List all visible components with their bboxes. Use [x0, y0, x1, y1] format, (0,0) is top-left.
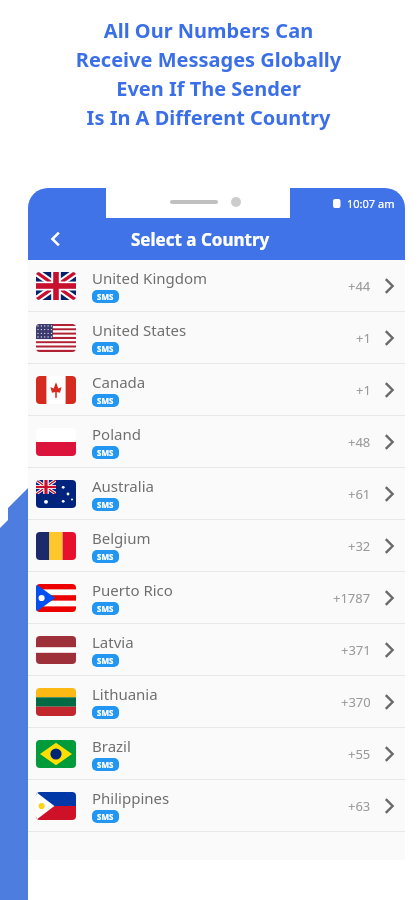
button[interactable]: Australia [28, 468, 405, 520]
staticText: SMS [97, 343, 114, 354]
staticText: Poland [92, 424, 141, 444]
staticText: United Kingdom [92, 268, 208, 288]
staticText: SMS [97, 707, 114, 718]
button[interactable]: United States [28, 312, 405, 364]
staticText: +44 [348, 277, 371, 295]
staticText: SMS [97, 395, 114, 406]
staticText: Receive Messages Globally [0, 46, 417, 73]
button[interactable]: Back [38, 221, 74, 257]
staticText: Select a Country [131, 228, 270, 251]
staticText: All Our Numbers Can [0, 17, 417, 44]
staticText: +48 [348, 433, 371, 451]
staticText: SMS [97, 499, 114, 510]
staticText: Philippines [92, 788, 170, 808]
staticText: SMS [97, 551, 114, 562]
staticText: 10:07 am [347, 196, 395, 211]
staticText: SMS [97, 759, 114, 770]
staticText: SMS [97, 811, 114, 822]
staticText: Canada [92, 372, 146, 392]
staticText: SMS [97, 603, 114, 614]
staticText: +371 [341, 641, 371, 659]
button[interactable]: Poland [28, 416, 405, 468]
button[interactable]: Philippines [28, 780, 405, 832]
staticText: SMS [97, 291, 114, 302]
staticText: +32 [348, 537, 371, 555]
staticText: Lithuania [92, 684, 158, 704]
button[interactable]: United Kingdom [28, 260, 405, 312]
staticText: +1787 [333, 589, 371, 607]
button[interactable]: Latvia [28, 624, 405, 676]
staticText: SMS [97, 655, 114, 666]
staticText: Brazil [92, 736, 131, 756]
staticText: Is In A Different Country [0, 104, 417, 131]
staticText: +63 [348, 797, 371, 815]
staticText: United States [92, 320, 187, 340]
staticText: Even If The Sender [0, 75, 417, 102]
staticText: +61 [348, 485, 371, 503]
staticText: SMS [97, 447, 114, 458]
button[interactable]: Belgium [28, 520, 405, 572]
button[interactable]: Puerto Rico [28, 572, 405, 624]
staticText: Belgium [92, 528, 151, 548]
staticText: Latvia [92, 632, 134, 652]
button[interactable]: Canada [28, 364, 405, 416]
button[interactable]: Brazil [28, 728, 405, 780]
staticText: Australia [92, 476, 154, 496]
staticText: +370 [341, 693, 371, 711]
button[interactable]: Lithuania [28, 676, 405, 728]
staticText: +1 [356, 381, 371, 399]
staticText: +55 [348, 745, 371, 763]
staticText: +1 [356, 329, 371, 347]
staticText: Puerto Rico [92, 580, 173, 600]
